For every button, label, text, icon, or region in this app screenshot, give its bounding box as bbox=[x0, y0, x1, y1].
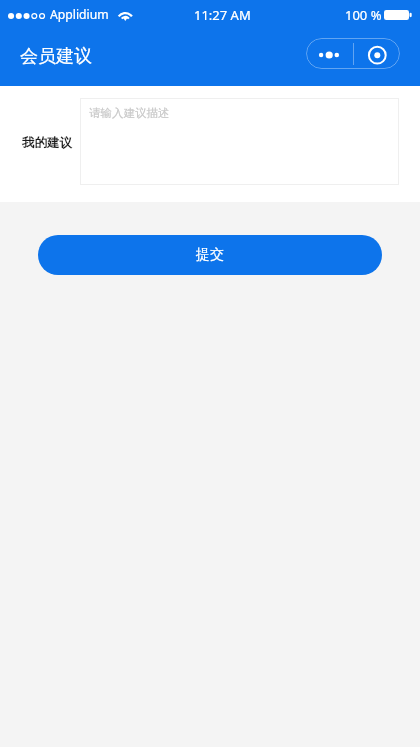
button[interactable]: More options bbox=[306, 38, 353, 69]
button[interactable]: Close mini program bbox=[354, 38, 400, 69]
staticText: Applidium bbox=[50, 6, 109, 23]
staticText: 11:27 AM bbox=[194, 6, 251, 24]
button[interactable]: 请输入建议描述 bbox=[80, 98, 399, 185]
button[interactable]: 提交 bbox=[38, 235, 382, 275]
staticText: 会员建议 bbox=[20, 45, 92, 68]
staticText: 请输入建议描述 bbox=[89, 106, 170, 120]
staticText: 100 % bbox=[345, 6, 382, 24]
staticText: 我的建议 bbox=[22, 135, 72, 151]
staticText: 提交 bbox=[196, 246, 224, 264]
